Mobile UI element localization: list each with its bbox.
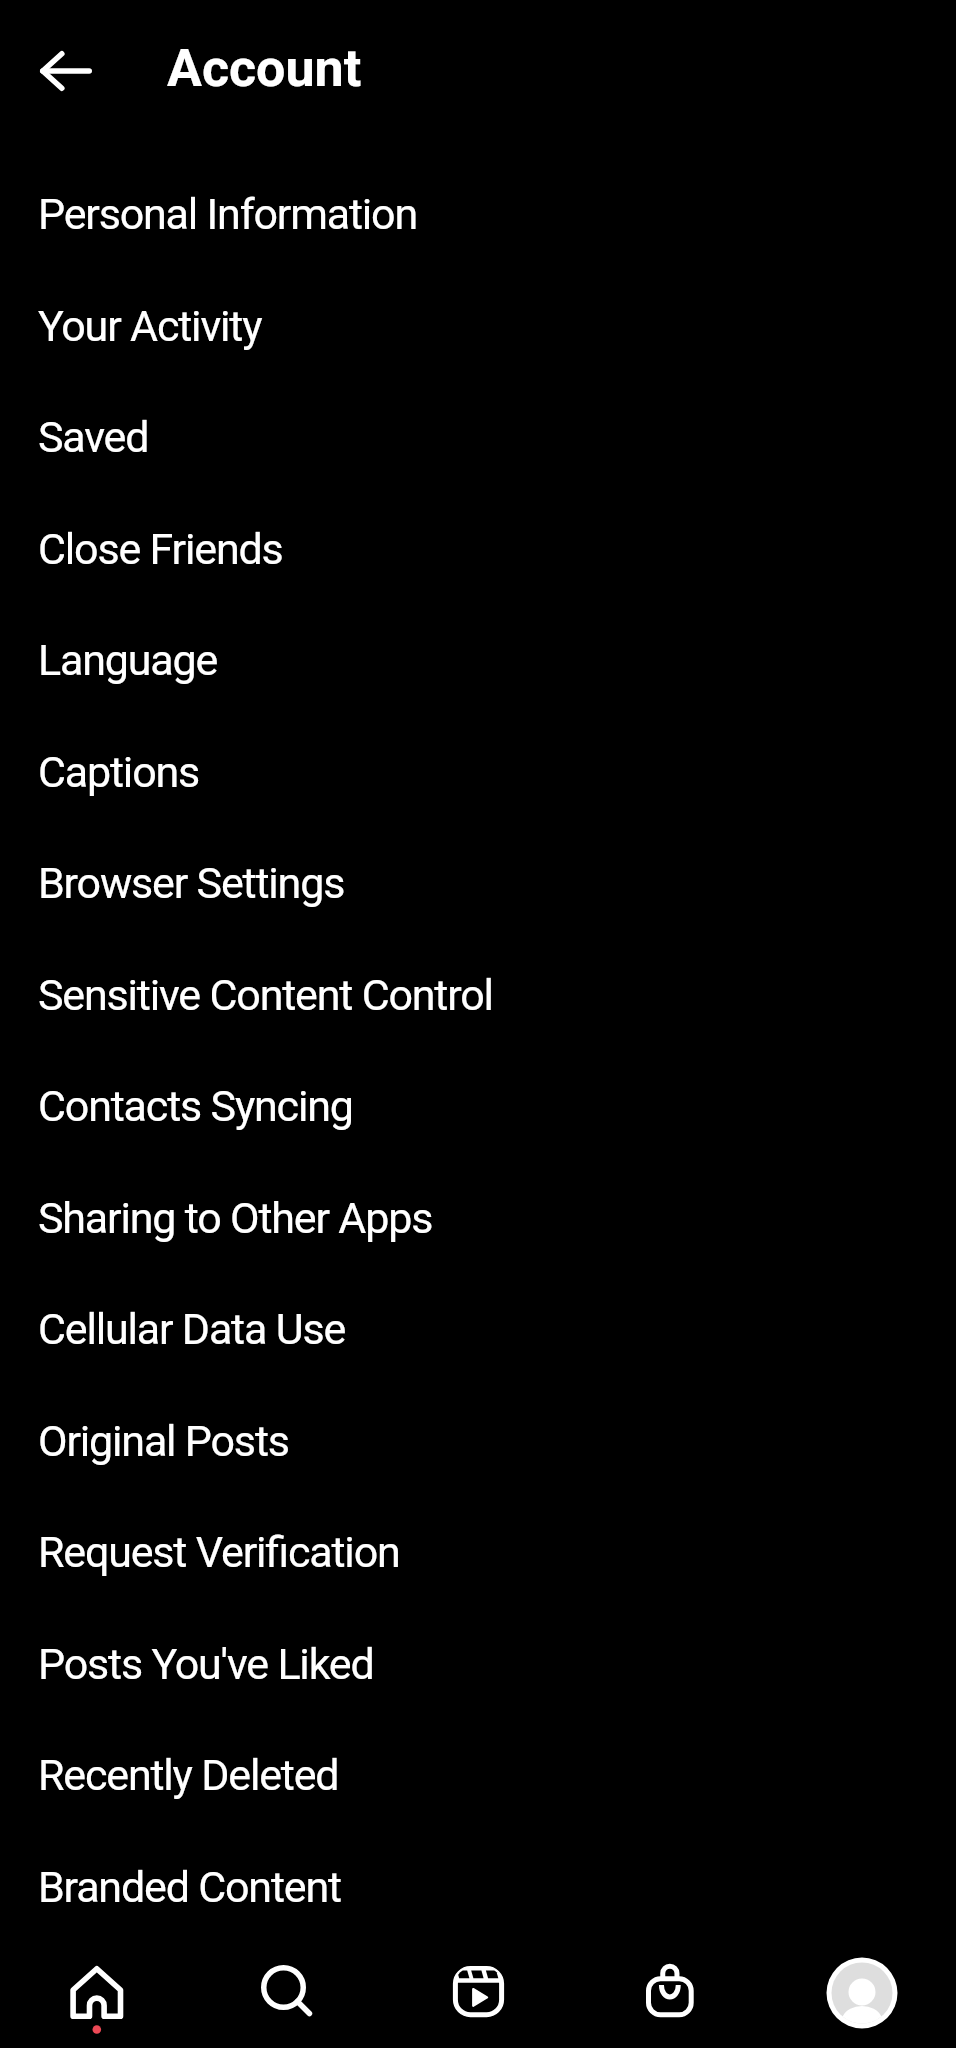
staticText: Cellular Data Use xyxy=(38,1304,346,1354)
button[interactable]: Search xyxy=(191,1930,382,2048)
staticText: Language xyxy=(38,635,218,685)
staticText: Your Activity xyxy=(38,301,262,351)
staticText: Sharing to Other Apps xyxy=(38,1193,433,1243)
staticText: Close Friends xyxy=(38,524,283,574)
button[interactable]: Browser Settings xyxy=(0,858,956,970)
button[interactable]: Reels xyxy=(383,1930,574,2048)
staticText: Posts You've Liked xyxy=(38,1639,374,1689)
button[interactable]: Posts You've Liked xyxy=(0,1639,956,1751)
button[interactable]: Recently Deleted xyxy=(0,1750,956,1862)
staticText: Captions xyxy=(38,747,200,797)
button[interactable]: Back xyxy=(15,20,117,122)
staticText: Browser Settings xyxy=(38,858,345,908)
button[interactable]: Captions xyxy=(0,747,956,859)
button[interactable]: Original Posts xyxy=(0,1416,956,1528)
staticText: Saved xyxy=(38,412,149,462)
button[interactable]: Language xyxy=(0,635,956,747)
button[interactable]: Branded Content xyxy=(0,1862,956,1974)
staticText: Sensitive Content Control xyxy=(38,970,493,1020)
staticText: Personal Information xyxy=(38,189,417,239)
staticText: Account xyxy=(167,38,362,99)
button[interactable]: Request Verification xyxy=(0,1527,956,1639)
staticText: Recently Deleted xyxy=(38,1750,339,1800)
button[interactable]: Close Friends xyxy=(0,524,956,636)
button[interactable]: Personal Information xyxy=(0,189,956,301)
button[interactable]: Shop xyxy=(574,1930,765,2048)
button[interactable]: Your Activity xyxy=(0,301,956,413)
button[interactable]: Sensitive Content Control xyxy=(0,970,956,1082)
button[interactable]: Contacts Syncing xyxy=(0,1081,956,1193)
button[interactable]: Saved xyxy=(0,412,956,524)
button[interactable]: Sharing to Other Apps xyxy=(0,1193,956,1305)
button[interactable]: Profile xyxy=(765,1930,956,2048)
button[interactable]: Home xyxy=(0,1930,191,2048)
button[interactable]: Cellular Data Use xyxy=(0,1304,956,1416)
staticText: Original Posts xyxy=(38,1416,289,1466)
staticText: Branded Content xyxy=(38,1862,341,1912)
staticText: Request Verification xyxy=(38,1527,400,1577)
staticText: Contacts Syncing xyxy=(38,1081,353,1131)
